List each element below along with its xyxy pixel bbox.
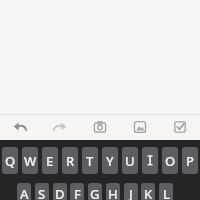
button[interactable]: W (22, 147, 38, 174)
button[interactable]: Q (2, 147, 18, 174)
button[interactable] (46, 114, 74, 141)
staticText: P (186, 152, 194, 170)
button[interactable]: O (162, 147, 178, 174)
staticText: K (144, 185, 153, 200)
staticText: S (38, 185, 46, 200)
button[interactable]: L (159, 183, 173, 200)
button[interactable]: R (62, 147, 78, 174)
button[interactable]: T (82, 147, 98, 174)
button[interactable]: J (124, 183, 138, 200)
button[interactable]: D (53, 183, 67, 200)
staticText: W (24, 152, 37, 170)
staticText: F (74, 185, 81, 200)
staticText: D (55, 185, 65, 200)
staticText: L (163, 185, 170, 200)
button[interactable]: H (106, 183, 120, 200)
button[interactable]: A (17, 183, 31, 200)
button[interactable] (142, 147, 158, 174)
staticText: T (86, 152, 94, 170)
staticText: J (129, 185, 133, 200)
button[interactable] (126, 114, 154, 141)
staticText: Y (106, 152, 114, 170)
button[interactable]: G (88, 183, 102, 200)
button[interactable] (166, 114, 194, 141)
staticText: Q (5, 152, 16, 170)
button[interactable]: F (70, 183, 84, 200)
staticText: O (165, 152, 176, 170)
staticText: H (108, 185, 118, 200)
button[interactable]: S (35, 183, 49, 200)
button[interactable] (86, 114, 114, 141)
button[interactable]: P (182, 147, 198, 174)
button[interactable]: K (141, 183, 155, 200)
staticText: U (125, 152, 135, 170)
button[interactable]: U (122, 147, 138, 174)
button[interactable] (6, 114, 34, 141)
staticText: A (20, 185, 29, 200)
staticText: R (66, 152, 75, 170)
button[interactable]: E (42, 147, 58, 174)
staticText: E (46, 152, 54, 170)
staticText: G (90, 185, 100, 200)
button[interactable]: Y (102, 147, 118, 174)
